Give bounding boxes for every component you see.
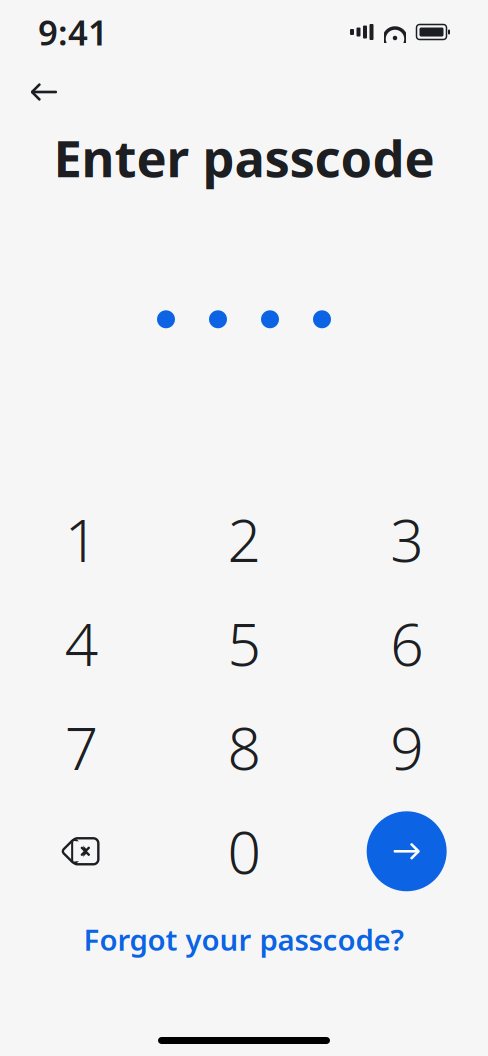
staticText: 7 xyxy=(65,708,98,786)
button[interactable]: 3 xyxy=(355,487,459,591)
staticText: 9:41 xyxy=(38,9,108,55)
button[interactable]: 9 xyxy=(355,695,459,799)
button[interactable]: 5 xyxy=(192,591,296,695)
button[interactable]: Back xyxy=(18,66,70,118)
staticText: 1 xyxy=(65,500,98,578)
button[interactable]: 7 xyxy=(29,695,133,799)
staticText: Enter passcode xyxy=(53,124,434,191)
button[interactable]: Forgot your passcode? xyxy=(0,919,488,959)
staticText: 5 xyxy=(227,604,260,682)
staticText: 3 xyxy=(390,500,423,578)
staticText: 9 xyxy=(390,708,423,786)
staticText: 8 xyxy=(227,708,260,786)
button[interactable]: 6 xyxy=(355,591,459,695)
button[interactable]: 4 xyxy=(29,591,133,695)
button[interactable]: 8 xyxy=(192,695,296,799)
button[interactable]: Delete xyxy=(29,799,133,903)
staticText: 4 xyxy=(65,604,98,682)
button[interactable]: 2 xyxy=(192,487,296,591)
button[interactable]: 0 xyxy=(192,799,296,903)
staticText: 0 xyxy=(227,812,260,890)
staticText: 2 xyxy=(227,500,260,578)
staticText: Forgot your passcode? xyxy=(83,920,404,959)
staticText: 6 xyxy=(390,604,423,682)
button[interactable]: Submit passcode xyxy=(355,799,459,903)
button[interactable]: 1 xyxy=(29,487,133,591)
